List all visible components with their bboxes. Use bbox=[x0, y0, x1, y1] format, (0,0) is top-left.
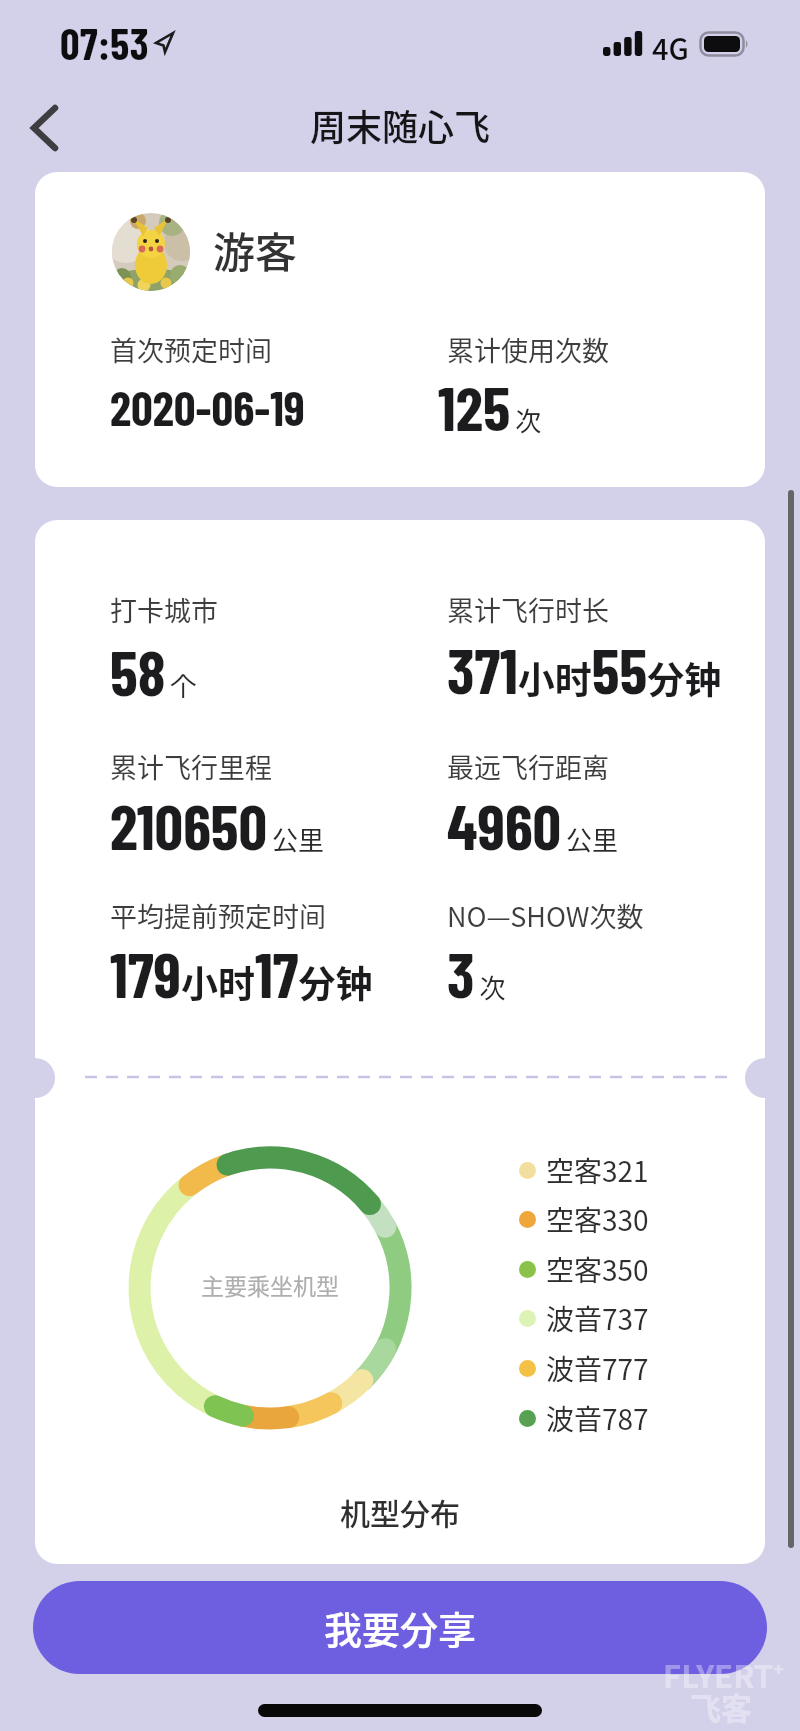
staticText: 打卡城市 bbox=[110, 590, 218, 629]
staticText: 空客330 bbox=[546, 1199, 649, 1240]
staticText: 累计飞行时长 bbox=[447, 590, 609, 629]
staticText: 机型分布 bbox=[340, 1490, 460, 1533]
staticText: 周末随心飞 bbox=[310, 99, 491, 151]
staticText: FLYERT⁺ bbox=[663, 1652, 785, 1697]
staticText: 主要乘坐机型 bbox=[201, 1268, 339, 1301]
staticText: 最远飞行距离 bbox=[447, 747, 609, 786]
staticText: 波音777 bbox=[546, 1348, 649, 1389]
staticText: 空客321 bbox=[546, 1150, 649, 1191]
staticText: 4960 公里 bbox=[447, 787, 619, 863]
staticText: 07:53 bbox=[60, 17, 149, 69]
button[interactable]: 我要分享 bbox=[33, 1581, 767, 1674]
staticText: 2020-06-19 bbox=[110, 378, 305, 436]
staticText: 我要分享 bbox=[324, 1600, 477, 1655]
staticText: 累计飞行里程 bbox=[110, 747, 272, 786]
staticText: 平均提前预定时间 bbox=[110, 896, 326, 935]
staticText: 首次预定时间 bbox=[110, 330, 272, 369]
button[interactable] bbox=[112, 213, 190, 291]
staticText: 飞客 bbox=[690, 1684, 752, 1729]
staticText: 累计使用次数 bbox=[447, 330, 609, 369]
staticText: NO—SHOW次数 bbox=[447, 896, 644, 935]
staticText: 371小时55分钟 bbox=[447, 631, 722, 707]
staticText: 58 个 bbox=[110, 633, 197, 709]
button[interactable] bbox=[22, 100, 74, 156]
staticText: 179小时17分钟 bbox=[110, 935, 373, 1011]
staticText: 3 次 bbox=[447, 935, 506, 1011]
staticText: 波音737 bbox=[546, 1298, 649, 1339]
staticText: 125 次 bbox=[438, 369, 542, 443]
staticText: 游客 bbox=[213, 219, 298, 280]
staticText: 4G bbox=[652, 26, 689, 68]
staticText: 波音787 bbox=[546, 1398, 649, 1439]
staticText: 空客350 bbox=[546, 1249, 649, 1290]
staticText: 210650 公里 bbox=[110, 787, 324, 863]
